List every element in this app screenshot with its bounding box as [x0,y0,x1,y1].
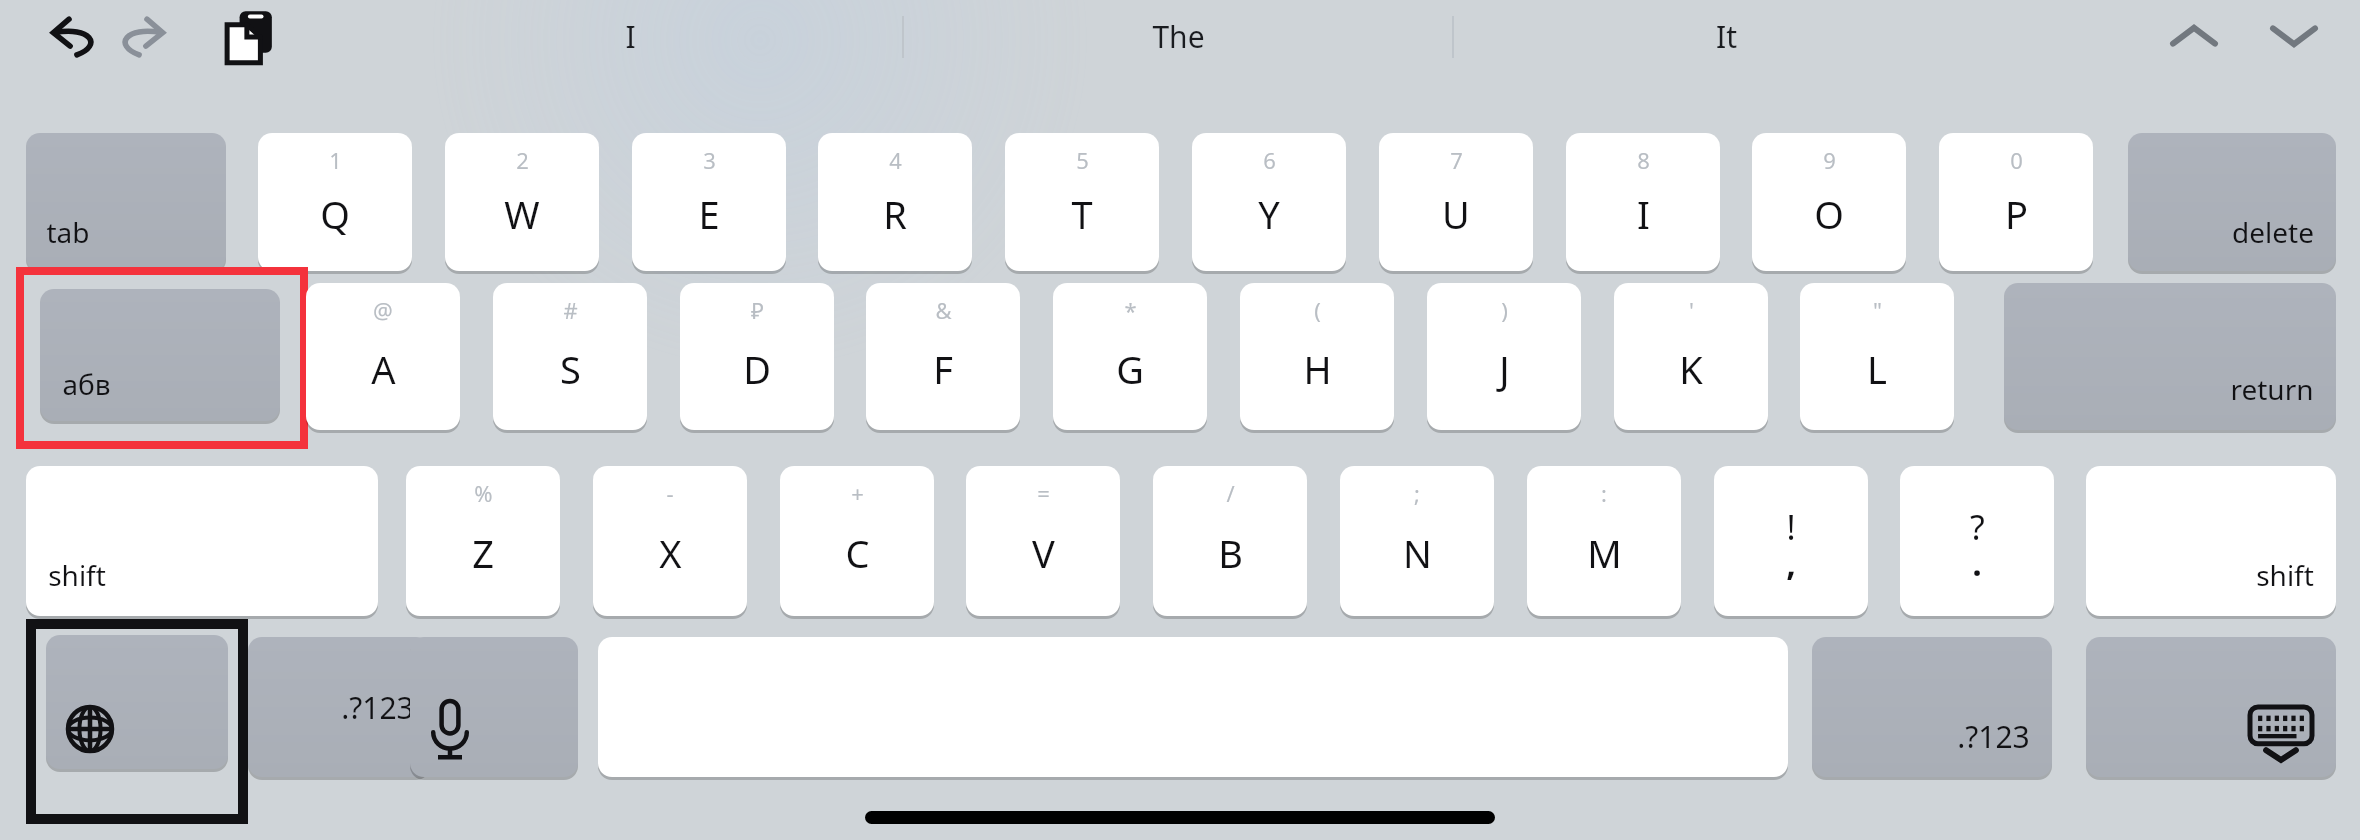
button[interactable]: Previous [2154,6,2234,66]
staticText: L [1867,343,1887,395]
staticText: 2 [516,145,529,175]
button[interactable]: tab [26,133,226,271]
button[interactable]: Undo [30,8,126,64]
staticText: H [1303,343,1332,395]
button[interactable]: 0 [1939,133,2093,271]
button[interactable]: / [1153,466,1307,616]
button[interactable]: Next [2254,6,2334,66]
button[interactable]: 7 [1379,133,1533,271]
staticText: Y [1258,188,1280,240]
staticText: A [371,343,396,395]
staticText: = [1037,478,1050,508]
button[interactable]: .?123 [248,637,430,777]
staticText: O [1814,188,1844,240]
staticText: I [1637,188,1650,240]
staticText: shift [48,556,106,594]
staticText: delete [2232,213,2314,251]
button[interactable]: Redo [90,8,186,64]
staticText: .?123 [341,687,414,728]
staticText: , [1786,540,1796,586]
staticText: It [1716,16,1737,57]
staticText: F [933,343,953,395]
staticText: T [1071,188,1093,240]
button[interactable]: 1 [258,133,412,271]
button[interactable]: 3 [632,133,786,271]
staticText: 1 [329,145,342,175]
staticText: ; [1414,478,1420,508]
button[interactable]: @ [306,283,460,430]
staticText: J [1499,343,1510,395]
button[interactable]: % [406,466,560,616]
staticText: ! [1786,504,1796,550]
staticText: 6 [1263,145,1276,175]
button[interactable]: ; [1340,466,1494,616]
button[interactable]: delete [2128,133,2336,271]
staticText: ' [1689,295,1694,325]
staticText: I [625,16,636,57]
staticText: 5 [1076,145,1089,175]
button[interactable]: 6 [1192,133,1346,271]
staticText: / [1226,478,1235,508]
staticText: ) [1501,295,1508,325]
staticText: R [883,188,907,240]
staticText: : [1601,478,1607,508]
button[interactable]: shift [2086,466,2336,616]
button[interactable]: ? [1900,466,2054,616]
staticText: & [935,295,952,325]
button[interactable]: ) [1427,283,1581,430]
button[interactable]: Hide keyboard [2086,637,2336,777]
button[interactable]: & [866,283,1020,430]
staticText: E [698,188,720,240]
button[interactable]: 4 [818,133,972,271]
button[interactable]: .?123 [1812,637,2052,777]
button[interactable]: The [998,0,1358,72]
staticText: V [1032,527,1055,579]
staticText: . [1972,540,1982,586]
button[interactable]: * [1053,283,1207,430]
button[interactable]: 5 [1005,133,1159,271]
button[interactable]: ₽ [680,283,834,430]
staticText: P [2005,188,2028,240]
staticText: 0 [2010,145,2023,175]
staticText: ( [1314,295,1321,325]
button[interactable]: # [493,283,647,430]
staticText: " [1873,295,1882,325]
button[interactable]: абв [40,289,280,421]
staticText: return [2230,370,2314,408]
staticText: D [743,343,771,395]
button[interactable]: - [593,466,747,616]
staticText: The [1152,16,1205,57]
staticText: Q [320,188,350,240]
staticText: * [1124,295,1137,325]
button[interactable]: 9 [1752,133,1906,271]
button[interactable]: I [450,0,810,72]
button[interactable]: ( [1240,283,1394,430]
button[interactable]: ! [1714,466,1868,616]
staticText: 4 [889,145,902,175]
staticText: - [666,478,674,508]
staticText: 7 [1450,145,1463,175]
staticText: абв [62,365,111,403]
button[interactable]: Change keyboard language [46,635,228,769]
button[interactable]: ' [1614,283,1768,430]
button[interactable]: = [966,466,1120,616]
button[interactable]: + [780,466,934,616]
staticText: 3 [703,145,716,175]
staticText: 8 [1637,145,1650,175]
button[interactable]: Voice input [410,637,578,777]
button[interactable]: shift [26,466,378,616]
button[interactable]: It [1546,0,1906,72]
button[interactable]: 8 [1566,133,1720,271]
staticText: N [1403,527,1432,579]
button[interactable]: 2 [445,133,599,271]
button[interactable]: return [2004,283,2336,430]
staticText: G [1116,343,1144,395]
staticText: W [504,188,540,240]
button[interactable]: " [1800,283,1954,430]
button[interactable]: Paste [205,6,295,68]
button[interactable]: : [1527,466,1681,616]
staticText: Z [472,527,494,579]
staticText: shift [2256,556,2314,594]
staticText: K [1679,343,1703,395]
